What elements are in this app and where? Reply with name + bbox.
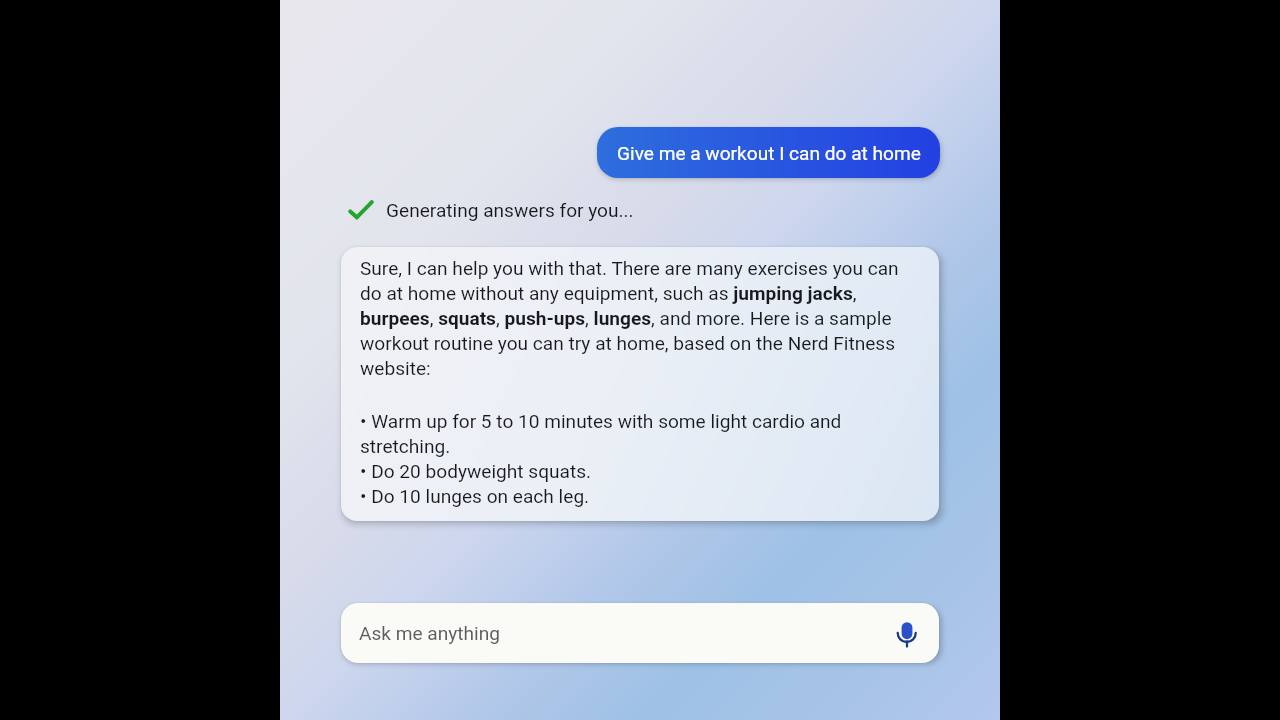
- button[interactable]: Sure, I can help you with that. There ar…: [341, 247, 939, 521]
- staticText: Ask me anything: [359, 622, 889, 644]
- staticText: Give me a workout I can do at home: [617, 142, 921, 164]
- button[interactable]: Generating answers for you...: [348, 196, 634, 224]
- button[interactable]: Voice input: [889, 615, 925, 651]
- button[interactable]: Give me a workout I can do at home: [597, 127, 940, 178]
- staticText: Sure, I can help you with that. There ar…: [360, 255, 916, 380]
- staticText: • Warm up for 5 to 10 minutes with some …: [360, 408, 916, 508]
- button[interactable]: Ask me anything: [341, 603, 939, 663]
- staticText: Generating answers for you...: [386, 199, 634, 221]
